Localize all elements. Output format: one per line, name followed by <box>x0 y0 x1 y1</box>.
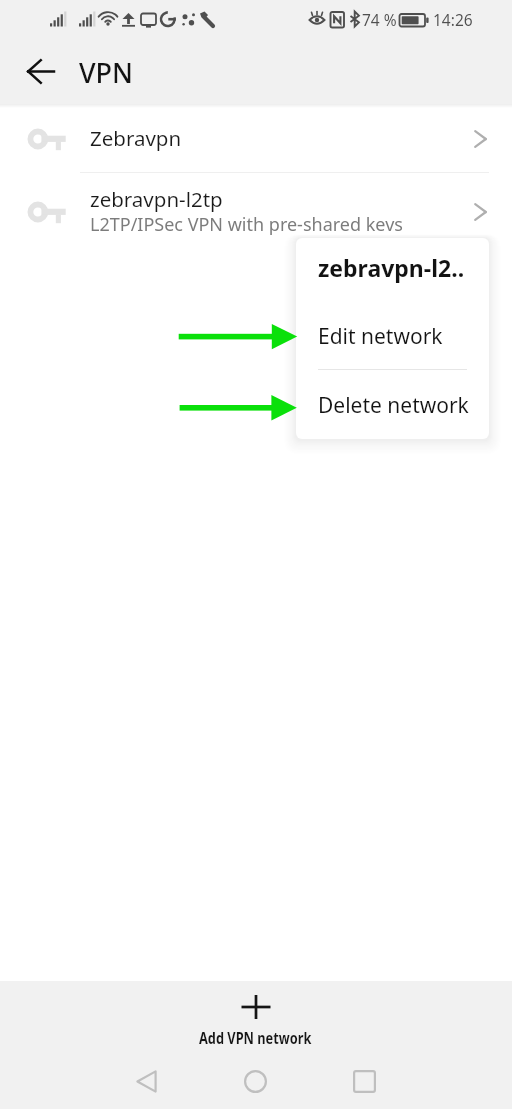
staticText: Add VPN network <box>199 1026 312 1048</box>
button[interactable]: Edit network <box>296 304 489 368</box>
staticText: Delete network <box>318 391 469 420</box>
staticText: VPN <box>79 54 134 91</box>
staticText: 14:26 <box>433 9 473 30</box>
button[interactable]: Home <box>220 1053 290 1109</box>
staticText: 74 % <box>362 9 397 30</box>
button[interactable]: Recents <box>329 1053 399 1109</box>
button[interactable]: zebravpn-l2tp <box>0 173 512 245</box>
button[interactable]: Zebravpn <box>0 108 512 172</box>
staticText: zebravpn-l2tp <box>90 185 223 213</box>
staticText: Zebravpn <box>90 124 182 152</box>
staticText: Edit network <box>318 322 443 351</box>
button[interactable]: Back <box>111 1053 181 1109</box>
button[interactable]: Add VPN network <box>0 981 512 1053</box>
button[interactable]: Delete network <box>296 371 489 439</box>
staticText: zebravpn-l2.. <box>318 252 465 283</box>
staticText: L2TP/IPSec VPN with pre-shared kevs <box>90 212 403 237</box>
button[interactable]: Back <box>12 47 68 96</box>
